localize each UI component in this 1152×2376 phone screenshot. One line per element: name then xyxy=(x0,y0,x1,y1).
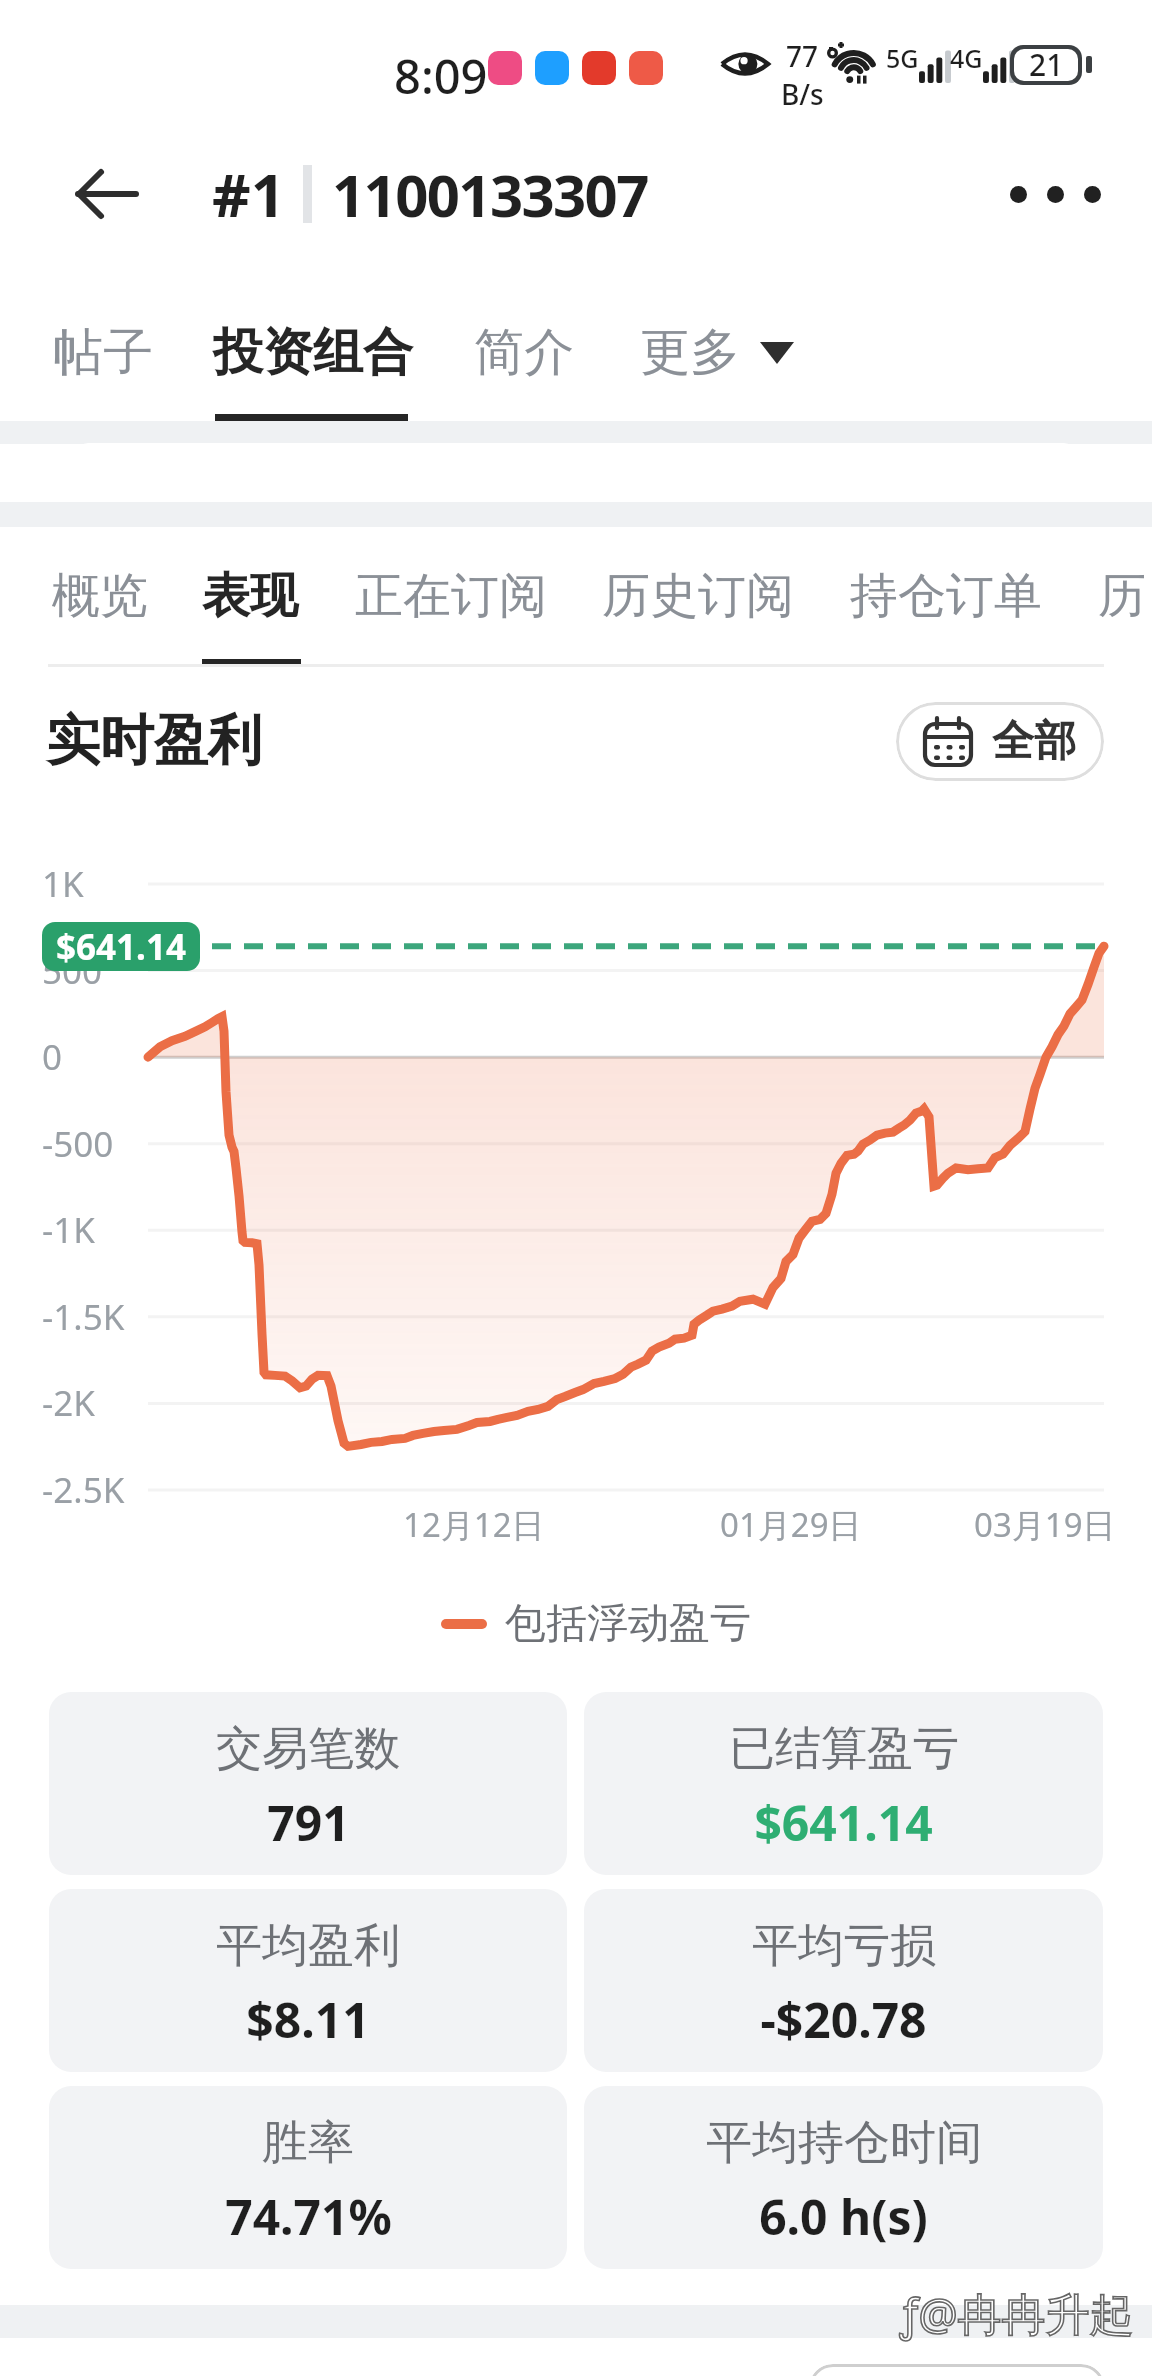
button[interactable]: 历 xyxy=(1098,549,1146,626)
button[interactable]: 交易笔数 xyxy=(49,1692,567,1875)
button[interactable]: 已结算盈亏 xyxy=(584,1692,1103,1875)
staticText: 平均亏损 xyxy=(752,1917,936,1975)
button[interactable]: More options xyxy=(1000,139,1110,249)
button[interactable]: 概览 xyxy=(52,549,148,626)
button[interactable]: 简介 xyxy=(474,305,574,384)
button[interactable]: 平均持仓时间 xyxy=(584,2086,1103,2269)
staticText: 4G xyxy=(950,41,983,75)
staticText: 1100133307 xyxy=(332,155,648,234)
staticText: -2K xyxy=(42,1379,95,1427)
staticText: 8:09 xyxy=(394,44,488,108)
button[interactable]: Back xyxy=(56,144,156,244)
staticText: 概览 xyxy=(52,566,148,626)
button[interactable]: 全部 xyxy=(896,702,1104,781)
staticText: 历史订阅 xyxy=(602,566,794,626)
staticText: -$20.78 xyxy=(760,1987,927,2052)
staticText: 500 xyxy=(42,947,103,995)
staticText: 交易笔数 xyxy=(216,1720,400,1778)
button[interactable]: 平均亏损 xyxy=(584,1889,1103,2072)
staticText: 5G xyxy=(886,41,919,75)
staticText: 简介 xyxy=(474,321,574,384)
staticText: -500 xyxy=(42,1120,114,1168)
staticText: $641.14 xyxy=(754,1790,933,1855)
button[interactable]: 更多 xyxy=(628,313,806,392)
staticText: 03月19日 xyxy=(974,1502,1116,1547)
button[interactable]: 投资组合 xyxy=(213,305,413,384)
staticText: 已结算盈亏 xyxy=(729,1720,959,1778)
staticText: $641.14 xyxy=(56,923,186,971)
button[interactable]: 历史订阅 xyxy=(602,549,794,626)
staticText: 1K xyxy=(42,860,84,908)
staticText: ƒ@冉冉升起 xyxy=(900,2283,1134,2343)
staticText: ƒ@冉冉升起 xyxy=(900,2283,1134,2343)
staticText: 21 xyxy=(1029,44,1064,85)
button[interactable]: 包括浮动盈亏 xyxy=(441,1598,751,1650)
staticText: 0 xyxy=(42,1033,63,1081)
staticText: #1 xyxy=(212,153,286,235)
staticText: 实时盈利 xyxy=(46,707,262,775)
staticText: 正在订阅 xyxy=(355,566,547,626)
staticText: 胜率 xyxy=(262,2114,354,2172)
button[interactable]: 帖子 xyxy=(53,305,153,384)
staticText: -1.5K xyxy=(42,1293,125,1341)
staticText: 平均持仓时间 xyxy=(706,2114,982,2172)
button[interactable]: 胜率 xyxy=(49,2086,567,2269)
staticText: 更多 xyxy=(640,321,740,384)
button[interactable]: 平均盈利 xyxy=(49,1889,567,2072)
staticText: -1K xyxy=(42,1206,95,1254)
staticText: 74.71% xyxy=(225,2184,392,2249)
staticText: 全部 xyxy=(992,715,1076,768)
staticText: 投资组合 xyxy=(213,321,413,384)
staticText: -2.5K xyxy=(42,1466,125,1514)
staticText: 表现 xyxy=(202,566,298,626)
staticText: 包括浮动盈亏 xyxy=(505,1598,751,1650)
staticText: 6.0 h(s) xyxy=(759,2184,928,2249)
staticText: 77 xyxy=(786,37,819,75)
staticText: 平均盈利 xyxy=(216,1917,400,1975)
button[interactable]: 持仓订单 xyxy=(850,549,1042,626)
button[interactable]: 正在订阅 xyxy=(355,549,547,626)
staticText: 01月29日 xyxy=(720,1502,862,1547)
staticText: $8.11 xyxy=(246,1987,370,2052)
staticText: 历 xyxy=(1098,566,1146,626)
staticText: B/s xyxy=(781,75,823,113)
button[interactable]: 表现 xyxy=(202,549,298,626)
staticText: 持仓订单 xyxy=(850,566,1042,626)
staticText: 12月12日 xyxy=(403,1502,545,1547)
staticText: 791 xyxy=(267,1790,350,1855)
staticText: 帖子 xyxy=(53,321,153,384)
